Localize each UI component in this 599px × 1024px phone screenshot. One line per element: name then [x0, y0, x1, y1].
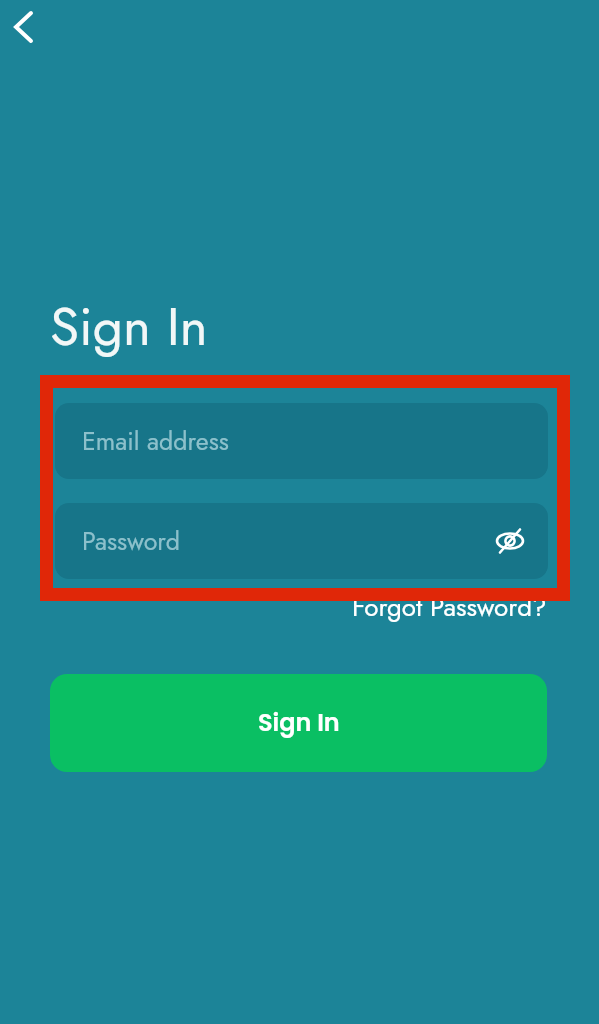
- button[interactable]: Password: [55, 503, 548, 579]
- button[interactable]: [4, 0, 56, 52]
- staticText: Sign In: [258, 706, 340, 740]
- button[interactable]: Sign In: [50, 674, 547, 772]
- staticText: Sign In: [50, 288, 208, 365]
- button[interactable]: Email address: [55, 403, 548, 479]
- button[interactable]: Forgot Password?: [352, 588, 547, 626]
- staticText: Email address: [82, 423, 229, 459]
- staticText: Password: [82, 523, 181, 559]
- button[interactable]: [492, 523, 528, 559]
- staticText: Forgot Password?: [352, 588, 547, 626]
